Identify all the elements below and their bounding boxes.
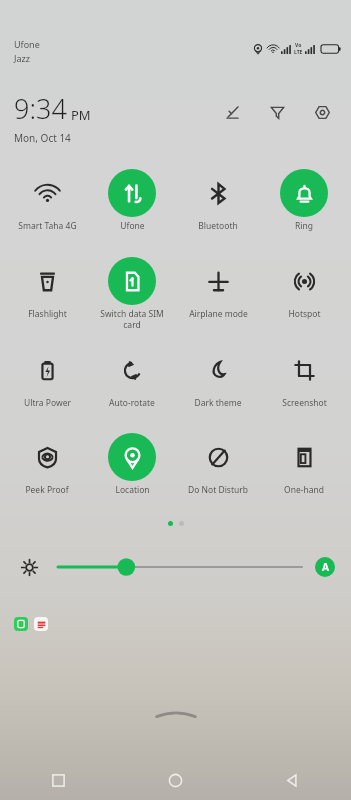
button[interactable]: Auto-rotate <box>91 345 173 410</box>
button[interactable]: Edit <box>219 99 245 125</box>
staticText: Do Not Disturb <box>188 484 248 496</box>
staticText: Ultra Power <box>24 397 71 409</box>
button[interactable]: Peek Proof <box>6 432 88 497</box>
staticText: Dark theme <box>194 397 242 409</box>
button[interactable]: Flashlight <box>6 256 88 321</box>
button[interactable]: Ultra Power <box>6 345 88 410</box>
button[interactable]: One-hand <box>263 432 345 497</box>
staticText: Vo <box>295 42 302 49</box>
button[interactable]: Back <box>234 760 351 800</box>
button[interactable]: Filter notifications <box>264 99 290 125</box>
button[interactable]: Settings <box>309 99 335 125</box>
button[interactable]: Airplane mode <box>177 256 259 321</box>
button[interactable]: Recents <box>0 760 117 800</box>
staticText: One-hand <box>284 484 324 496</box>
button[interactable]: Hotspot <box>263 256 345 321</box>
button[interactable]: Switch data SIM card <box>91 256 173 331</box>
button[interactable]: Home <box>117 760 234 800</box>
button[interactable]: Auto brightness <box>315 557 335 577</box>
staticText: Flashlight <box>28 308 67 320</box>
button[interactable]: Smart Taha 4G <box>6 168 88 233</box>
staticText: LTE <box>294 49 303 56</box>
button[interactable]: Dark theme <box>177 345 259 410</box>
staticText: Mon, Oct 14 <box>14 131 71 145</box>
button[interactable]: Bluetooth <box>177 168 259 233</box>
button[interactable]: Do Not Disturb <box>177 432 259 497</box>
staticText: Bluetooth <box>198 220 238 232</box>
button[interactable]: Ufone <box>91 168 173 233</box>
staticText: Location <box>115 484 150 496</box>
button[interactable]: Ring <box>263 168 345 233</box>
button[interactable]: Location <box>91 432 173 497</box>
staticText: Auto-rotate <box>109 397 155 409</box>
button[interactable]: Notification <box>34 617 48 631</box>
staticText: Screenshot <box>282 397 327 409</box>
staticText: Hotspot <box>288 308 321 320</box>
staticText: Switch data SIM card <box>100 308 164 330</box>
button[interactable]: Screenshot <box>263 345 345 410</box>
staticText: Ring <box>295 220 313 232</box>
staticText: Ufone <box>14 38 40 50</box>
button[interactable]: Notification <box>14 617 28 631</box>
staticText: 9:34 <box>14 90 67 127</box>
staticText: A <box>322 560 329 574</box>
staticText: Peek Proof <box>25 484 69 496</box>
staticText: Ufone <box>120 220 145 232</box>
staticText: Jazz <box>14 52 30 64</box>
staticText: Airplane mode <box>189 308 248 320</box>
button[interactable]: Brightness <box>58 556 302 578</box>
staticText: PM <box>71 106 91 124</box>
staticText: Smart Taha 4G <box>18 220 77 232</box>
